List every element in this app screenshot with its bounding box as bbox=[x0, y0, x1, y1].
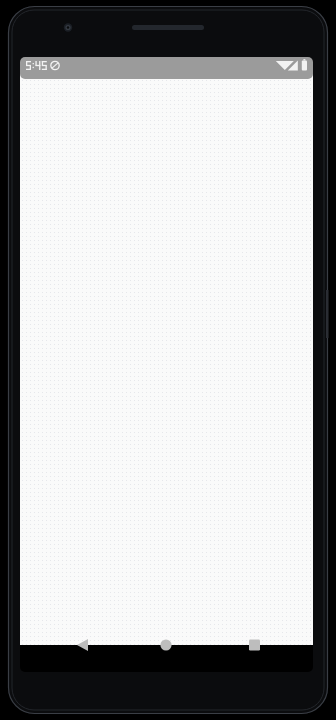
button[interactable]: Home bbox=[140, 631, 192, 659]
button[interactable]: App content bbox=[20, 74, 313, 645]
button[interactable]: Back bbox=[62, 631, 114, 659]
button[interactable]: Recent apps bbox=[228, 631, 280, 659]
